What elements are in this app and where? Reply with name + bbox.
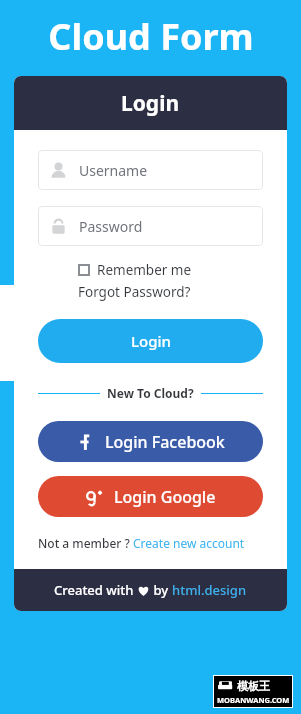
staticText: Login Google [114,486,216,508]
other: mobanwang.com watermark [214,676,292,707]
staticText: Cloud Form [48,12,254,61]
staticText: Login [121,89,180,118]
button[interactable]: Remember me [78,261,192,279]
button[interactable]: Password [38,206,263,246]
staticText: Create new account [133,535,245,551]
button[interactable]: Create new account [133,535,245,551]
staticText: New To Cloud? [107,385,194,401]
staticText: MOBANWANG.COM [217,695,290,705]
staticText: Login [131,331,171,351]
button[interactable]: html.design [172,581,247,599]
button[interactable]: Login Facebook [38,421,263,462]
staticText: Remember me [97,261,192,279]
staticText: Username [79,161,148,180]
button[interactable]: Forgot Password? [78,283,191,301]
button[interactable]: Login Google [38,476,263,517]
staticText: 模板王 [237,679,270,693]
button[interactable]: Login [38,319,263,363]
staticText: Password [79,217,143,236]
staticText: Not a member ? [38,535,133,551]
staticText: Forgot Password? [78,283,191,301]
staticText: Created with [54,581,137,599]
button[interactable]: Username [38,150,263,190]
staticText: html.design [172,581,247,599]
staticText: Login Facebook [105,431,225,453]
staticText: by [150,581,172,599]
